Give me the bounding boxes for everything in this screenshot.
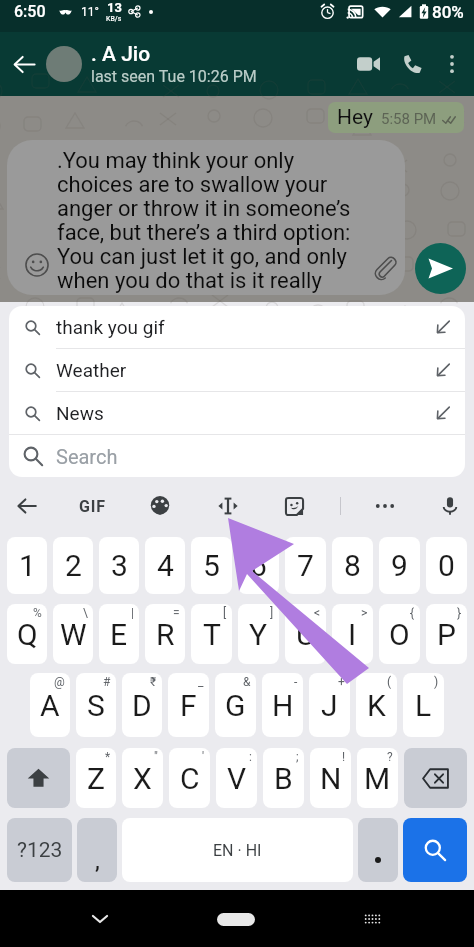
button[interactable]: 0 [426, 537, 467, 594]
staticText: " [154, 750, 158, 764]
button[interactable]: ?123 [7, 818, 72, 882]
staticText: K [367, 688, 386, 723]
button[interactable]: K [356, 673, 397, 737]
button[interactable]: V [216, 748, 257, 808]
button[interactable]: X [122, 748, 163, 808]
button[interactable]: 8 [332, 537, 373, 594]
staticText: , [95, 849, 100, 872]
staticText: 6 [250, 548, 267, 583]
staticText: T [203, 617, 221, 652]
staticText: E [110, 617, 128, 652]
button[interactable]: I [332, 604, 373, 664]
button[interactable]: S [76, 673, 116, 737]
staticText: ] [270, 606, 274, 620]
button[interactable]: Shift [7, 748, 70, 808]
staticText: - [294, 675, 298, 689]
staticText: 3 [111, 548, 128, 583]
button[interactable]: G [215, 673, 256, 737]
button[interactable]: Backspace [404, 748, 467, 808]
button[interactable]: Switch keyboard [350, 897, 394, 941]
staticText: 4 [157, 548, 174, 583]
button[interactable]: Attach [363, 245, 405, 287]
staticText: N [320, 761, 342, 796]
button[interactable]: R [145, 604, 185, 664]
staticText: thank you gif [56, 316, 165, 338]
button[interactable]: Voice input [428, 486, 472, 526]
button[interactable]: Voice call [390, 42, 434, 86]
button[interactable]: 9 [379, 537, 420, 594]
button[interactable]: , [77, 818, 117, 882]
button[interactable]: 6 [238, 537, 279, 594]
button[interactable]: B [263, 748, 304, 808]
staticText: W [60, 617, 87, 652]
button[interactable]: A [30, 673, 70, 737]
staticText: [ [223, 606, 227, 620]
staticText: Y [249, 617, 268, 652]
button[interactable]: Search [403, 818, 467, 882]
button[interactable]: Stickers [272, 486, 316, 526]
button[interactable]: Home [214, 897, 258, 941]
staticText: % [33, 606, 42, 620]
staticText: < [314, 606, 321, 620]
staticText: ? [387, 750, 393, 764]
staticText: ( [387, 675, 392, 689]
button[interactable]: F [168, 673, 209, 737]
button[interactable]: 5 [191, 537, 232, 594]
staticText: & [243, 675, 251, 689]
button[interactable]: P [426, 604, 467, 664]
button[interactable]: Hide keyboard [78, 897, 122, 941]
button[interactable] [358, 818, 398, 882]
staticText: O [389, 617, 410, 652]
button[interactable]: Q [7, 604, 47, 664]
button[interactable]: E [99, 604, 139, 664]
button[interactable]: O [379, 604, 420, 664]
button[interactable]: More options [434, 46, 470, 82]
button[interactable] [46, 46, 82, 82]
staticText: Search [56, 445, 118, 468]
button[interactable]: L [403, 673, 444, 737]
button[interactable]: More [363, 486, 407, 526]
staticText: L [415, 688, 432, 723]
button[interactable]: C [169, 748, 210, 808]
button[interactable]: J [309, 673, 350, 737]
button[interactable]: M [357, 748, 398, 808]
staticText: ! [342, 750, 346, 764]
button[interactable]: News [9, 392, 465, 434]
button[interactable]: Emoji [16, 244, 58, 286]
staticText: \ [83, 606, 88, 620]
staticText: 8 [344, 548, 361, 583]
button[interactable]: Text editing [206, 486, 250, 526]
staticText: Weather [56, 359, 127, 381]
button[interactable]: EN · HI [122, 818, 353, 882]
button[interactable]: 1 [7, 537, 47, 594]
button[interactable]: Y [238, 604, 279, 664]
staticText: G [225, 688, 246, 723]
staticText: 2 [65, 548, 82, 583]
button[interactable]: GIF [70, 486, 115, 526]
button[interactable]: Video call [346, 42, 390, 86]
staticText: = [173, 606, 180, 620]
button[interactable]: Send [415, 243, 466, 294]
button[interactable]: T [191, 604, 232, 664]
button[interactable]: D [122, 673, 162, 737]
button[interactable]: Themes [138, 486, 182, 526]
button[interactable]: Z [76, 748, 116, 808]
button[interactable]: W [53, 604, 93, 664]
button[interactable]: U [285, 604, 326, 664]
button[interactable]: 3 [99, 537, 139, 594]
button[interactable]: H [262, 673, 303, 737]
staticText: Z [87, 761, 105, 796]
button[interactable]: 7 [285, 537, 326, 594]
button[interactable]: thank you gif [9, 306, 465, 348]
button[interactable]: Back [5, 486, 49, 526]
button[interactable]: Weather [9, 349, 465, 391]
staticText: U [296, 617, 316, 652]
button[interactable]: N [310, 748, 351, 808]
button[interactable]: 4 [145, 537, 185, 594]
staticText: H [272, 688, 294, 723]
button[interactable]: 2 [53, 537, 93, 594]
staticText: J [321, 688, 338, 723]
button[interactable]: Search [9, 435, 465, 477]
button[interactable]: Back [4, 44, 44, 84]
staticText: 0 [438, 548, 455, 583]
